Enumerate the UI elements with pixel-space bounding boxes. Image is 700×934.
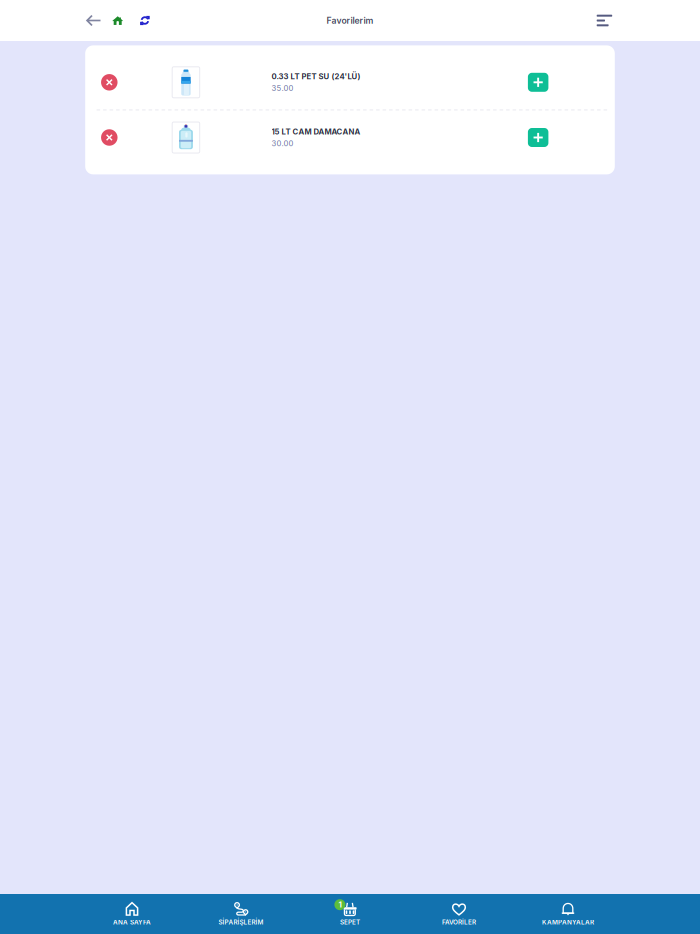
button[interactable]: ANA SAYFA [77,894,186,934]
button[interactable]: Add 0.33 LT PET SU (24'LÜ) [528,55,548,109]
staticText: 15 LT CAM DAMACANA [271,127,360,136]
button[interactable]: Remove 0.33 LT PET SU (24'LÜ) [85,55,133,109]
staticText: SİPARİŞLERİM [218,918,263,926]
staticText: 30.00 [271,139,293,148]
button[interactable]: Refresh [140,5,150,35]
staticText: 35.00 [271,84,293,93]
button[interactable]: Menu [597,5,612,35]
button[interactable]: FAVORİLER [404,894,513,934]
staticText: SEPET [340,918,360,926]
button[interactable]: Add 15 LT CAM DAMACANA [528,110,548,164]
button[interactable]: KAMPANYALAR [513,894,622,934]
staticText: KAMPANYALAR [542,918,594,926]
staticText: ANA SAYFA [113,918,151,926]
staticText: Favorilerim [326,15,373,26]
staticText: 1 [338,900,341,909]
staticText: 0.33 LT PET SU (24'LÜ) [271,72,360,81]
staticText: FAVORİLER [442,918,476,926]
button[interactable]: 1 [295,894,404,934]
button[interactable]: Home [112,5,123,35]
button[interactable]: SİPARİŞLERİM [186,894,295,934]
button[interactable]: Remove 15 LT CAM DAMACANA [85,110,133,164]
button[interactable]: Back [86,5,100,35]
